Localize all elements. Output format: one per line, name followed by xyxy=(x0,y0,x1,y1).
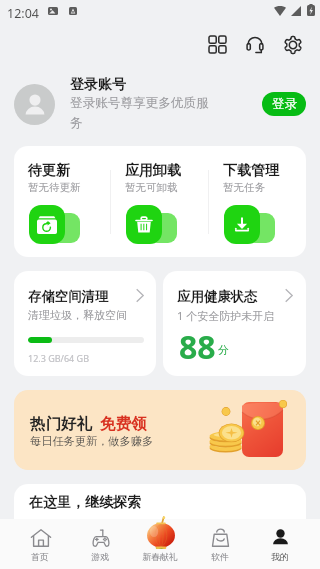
button[interactable]: 软件 xyxy=(190,519,250,569)
staticText: 存储空间清理 xyxy=(28,288,109,305)
staticText: 游戏 xyxy=(91,552,109,563)
staticText: 登录账号尊享更多优质服务 xyxy=(70,95,213,131)
staticText: 暂无可卸载 xyxy=(125,181,178,194)
button[interactable]: 应用卸载 xyxy=(111,146,208,257)
button[interactable]: 我的 xyxy=(250,519,310,569)
staticText: 12.3 GB/64 GB xyxy=(28,352,89,364)
button[interactable]: Settings xyxy=(278,30,307,59)
staticText: 软件 xyxy=(211,552,229,563)
button[interactable]: 存储空间清理 xyxy=(14,271,156,376)
staticText: 12:04 xyxy=(7,5,39,22)
staticText: 分 xyxy=(218,343,229,357)
staticText: 首页 xyxy=(31,552,49,563)
button[interactable]: All apps xyxy=(203,30,232,59)
staticText: 我的 xyxy=(271,552,289,563)
staticText: 暂无任务 xyxy=(223,181,265,194)
staticText: 登录账号 xyxy=(70,76,126,94)
button[interactable]: 登录 xyxy=(262,92,306,116)
staticText: 每日任务更新，做多赚多 xyxy=(30,434,154,448)
button[interactable]: 在这里，继续探索 xyxy=(14,484,306,524)
button[interactable]: 下载管理 xyxy=(209,146,306,257)
staticText: 热门好礼 xyxy=(30,414,92,434)
button[interactable]: Customer support xyxy=(240,30,269,59)
button[interactable]: 游戏 xyxy=(70,519,130,569)
staticText: 免费领 xyxy=(100,414,147,434)
staticText: 88 xyxy=(179,325,216,369)
button[interactable]: 待更新 xyxy=(14,146,110,257)
staticText: 待更新 xyxy=(28,162,70,180)
staticText: 登录 xyxy=(272,96,297,112)
staticText: 下载管理 xyxy=(223,162,279,180)
button[interactable]: 新春献礼 xyxy=(130,519,190,569)
staticText: 1 个安全防护未开启 xyxy=(177,308,275,323)
button[interactable]: 首页 xyxy=(10,519,70,569)
button[interactable]: 应用健康状态 xyxy=(163,271,306,376)
button[interactable]: 登录账号 xyxy=(0,76,320,132)
staticText: 在这里，继续探索 xyxy=(29,494,141,512)
button[interactable]: 热门好礼 xyxy=(14,390,306,470)
staticText: 新春献礼 xyxy=(142,552,178,563)
staticText: 应用健康状态 xyxy=(177,288,258,305)
staticText: 暂无待更新 xyxy=(28,181,81,194)
staticText: 应用卸载 xyxy=(125,162,181,180)
staticText: 清理垃圾，释放空间 xyxy=(28,308,127,322)
